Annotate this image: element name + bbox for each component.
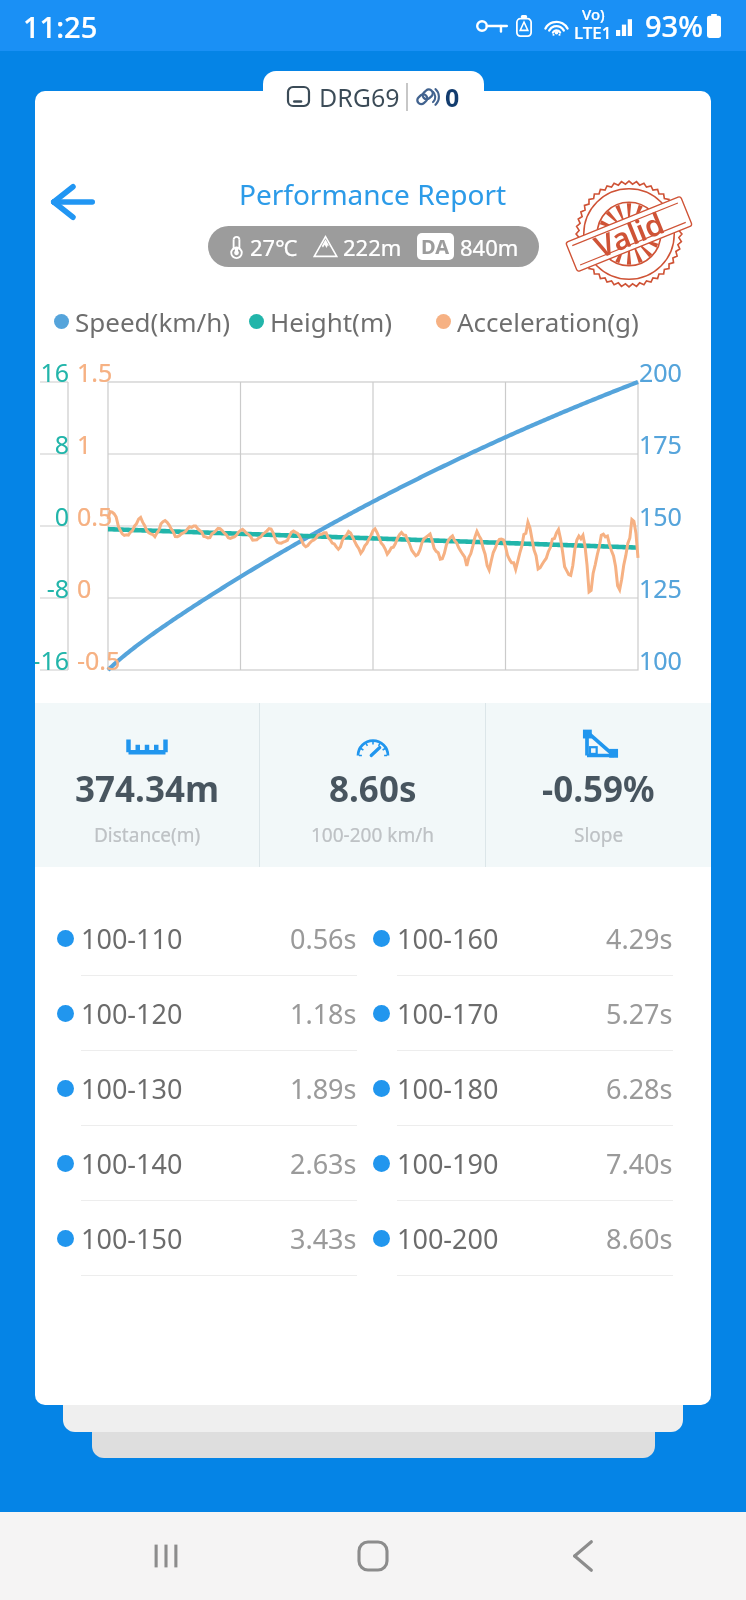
button[interactable]: 8.60s — [260, 703, 485, 867]
button[interactable]: Home — [329, 1512, 417, 1600]
staticText: 6.28s — [606, 1070, 673, 1107]
button[interactable]: Back — [35, 169, 111, 234]
staticText: 1.89s — [290, 1070, 357, 1107]
staticText: 100-150 — [81, 1220, 183, 1257]
button[interactable]: 100-110 — [57, 901, 373, 976]
staticText: 0 — [77, 571, 145, 605]
button[interactable]: 100-140 — [57, 1126, 373, 1201]
staticText: Valid — [588, 202, 670, 267]
staticText: 2.63s — [290, 1145, 357, 1182]
button[interactable]: 100-170 — [373, 976, 689, 1051]
staticText: 0 — [445, 80, 460, 114]
staticText: Acceleration(g) — [457, 304, 639, 339]
staticText: 1.18s — [290, 995, 357, 1032]
staticText: -0.59% — [542, 765, 655, 813]
staticText: 125 — [639, 571, 682, 605]
button[interactable]: 100-190 — [373, 1126, 689, 1201]
button[interactable]: 100-200 — [373, 1201, 689, 1276]
staticText: 27℃ — [250, 232, 298, 262]
staticText: 840m — [460, 232, 519, 262]
staticText: 222m — [343, 232, 402, 262]
staticText: 8 — [35, 427, 69, 461]
staticText: -16 — [35, 643, 69, 677]
staticText: 1.5 — [77, 355, 145, 389]
staticText: DRG69 — [319, 80, 400, 114]
staticText: 100-180 — [397, 1070, 499, 1107]
staticText: 8.60s — [606, 1220, 673, 1257]
staticText: 100-170 — [397, 995, 499, 1032]
staticText: 7.40s — [606, 1145, 673, 1182]
button[interactable]: 100-130 — [57, 1051, 373, 1126]
staticText: 100-190 — [397, 1145, 499, 1182]
button[interactable]: DRG69 — [263, 71, 484, 122]
staticText: 16 — [35, 355, 69, 389]
staticText: -0.5 — [77, 643, 145, 677]
staticText: LTE1 — [574, 21, 612, 44]
staticText: 200 — [639, 355, 682, 389]
staticText: Speed(km/h) — [75, 304, 231, 339]
staticText: Performance Report — [239, 175, 507, 213]
staticText: 0.5 — [77, 499, 145, 533]
button[interactable]: 100-120 — [57, 976, 373, 1051]
staticText: 100-160 — [397, 920, 499, 957]
staticText: 0.56s — [290, 920, 357, 957]
staticText: 100-200 — [397, 1220, 499, 1257]
staticText: 100-200 km/h — [311, 822, 434, 848]
staticText: 5.27s — [606, 995, 673, 1032]
button[interactable]: Recent apps — [122, 1512, 210, 1600]
staticText: -8 — [35, 571, 69, 605]
staticText: 100-110 — [81, 920, 183, 957]
staticText: 100-140 — [81, 1145, 183, 1182]
staticText: Height(m) — [270, 304, 392, 339]
staticText: Vo) — [582, 4, 605, 24]
staticText: 150 — [639, 499, 682, 533]
button[interactable]: -0.59% — [486, 703, 711, 867]
button[interactable]: Back — [539, 1512, 627, 1600]
staticText: 100-130 — [81, 1070, 183, 1107]
staticText: 11:25 — [23, 7, 98, 46]
staticText: 100-120 — [81, 995, 183, 1032]
staticText: 3.43s — [290, 1220, 357, 1257]
button[interactable]: 100-160 — [373, 901, 689, 976]
button[interactable]: 100-180 — [373, 1051, 689, 1126]
button[interactable]: 374.34m — [35, 703, 259, 867]
staticText: 1 — [77, 427, 145, 461]
staticText: 4.29s — [606, 920, 673, 957]
button[interactable]: 100-150 — [57, 1201, 373, 1276]
staticText: Distance(m) — [94, 822, 201, 848]
staticText: 100 — [639, 643, 682, 677]
staticText: 0 — [35, 499, 69, 533]
button[interactable]: 27℃ — [208, 226, 539, 267]
staticText: 175 — [639, 427, 682, 461]
staticText: Slope — [574, 822, 624, 848]
staticText: 374.34m — [75, 765, 220, 813]
staticText: 8.60s — [329, 765, 417, 813]
staticText: 93% — [645, 6, 703, 45]
staticText: DA — [421, 233, 450, 260]
